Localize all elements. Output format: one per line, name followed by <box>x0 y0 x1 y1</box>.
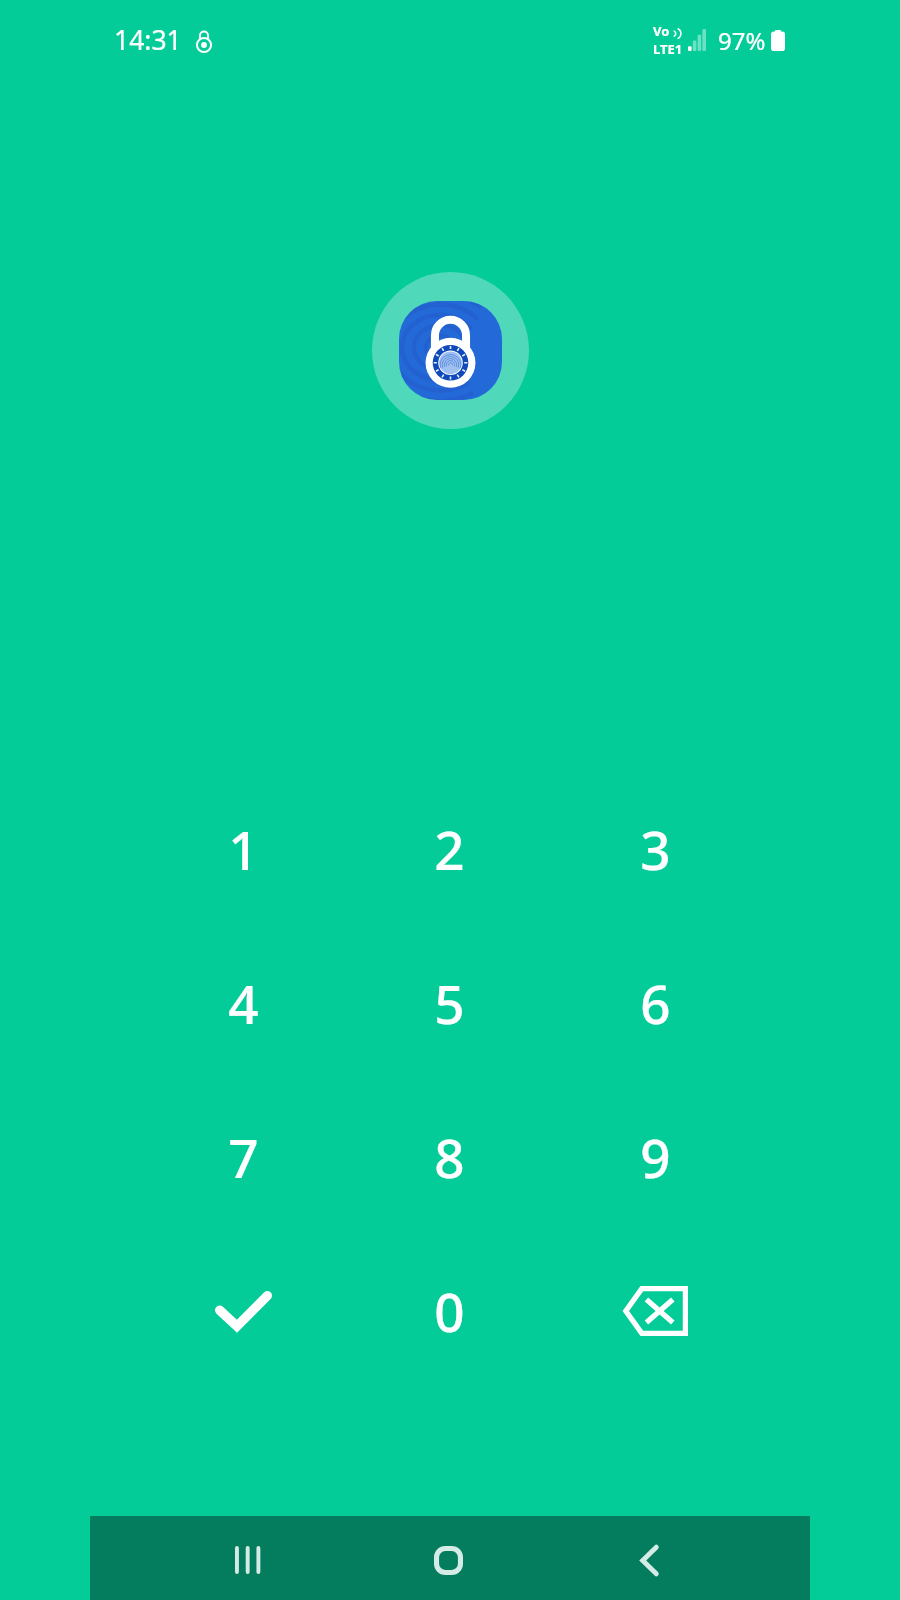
staticText: LTE1 <box>653 40 683 55</box>
button[interactable]: Confirm <box>140 1234 346 1388</box>
button[interactable]: 1 <box>140 772 346 926</box>
button[interactable]: 3 <box>552 772 758 926</box>
staticText: 1 <box>228 813 259 885</box>
button[interactable]: Recents <box>147 1520 348 1600</box>
staticText: 14:31 <box>114 22 182 58</box>
staticText: 9 <box>640 1121 671 1193</box>
staticText: 6 <box>640 967 671 1039</box>
staticText: 4 <box>228 967 259 1039</box>
button[interactable]: 6 <box>552 926 758 1080</box>
button[interactable]: Home <box>348 1520 549 1600</box>
staticText: 2 <box>434 813 465 885</box>
button[interactable]: Delete <box>552 1234 758 1388</box>
button[interactable]: Back <box>549 1520 750 1600</box>
button[interactable]: 0 <box>346 1234 552 1388</box>
button[interactable]: 2 <box>346 772 552 926</box>
button[interactable]: 7 <box>140 1080 346 1234</box>
staticText: 0 <box>434 1275 465 1347</box>
staticText: 8 <box>434 1121 465 1193</box>
staticText: 5 <box>434 967 465 1039</box>
button[interactable]: 5 <box>346 926 552 1080</box>
button[interactable]: 4 <box>140 926 346 1080</box>
staticText: Vo <box>653 22 670 40</box>
staticText: 3 <box>640 813 671 885</box>
staticText: 97% <box>718 24 766 57</box>
button[interactable]: 8 <box>346 1080 552 1234</box>
button[interactable]: 9 <box>552 1080 758 1234</box>
staticText: 7 <box>228 1121 259 1193</box>
